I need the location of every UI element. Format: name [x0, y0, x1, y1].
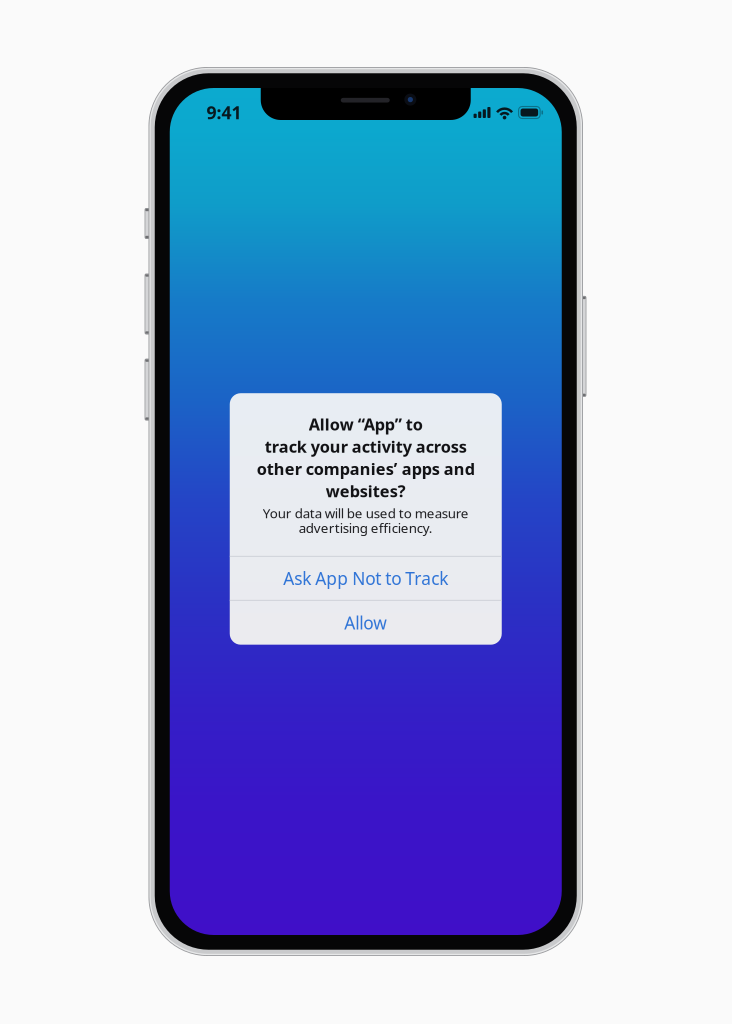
staticText: other companies’ apps and — [257, 458, 475, 480]
staticText: websites? — [326, 480, 406, 502]
button[interactable]: Allow — [230, 601, 502, 645]
staticText: Allow “App” to — [309, 413, 423, 435]
staticText: Your data will be used to measure — [263, 504, 469, 522]
staticText: track your activity across — [265, 435, 467, 458]
staticText: Ask App Not to Track — [283, 566, 448, 590]
staticText: 9:41 — [207, 100, 242, 124]
button[interactable]: Ask App Not to Track — [230, 557, 502, 600]
staticText: advertising efficiency. — [299, 519, 433, 537]
staticText: Allow — [344, 611, 387, 634]
